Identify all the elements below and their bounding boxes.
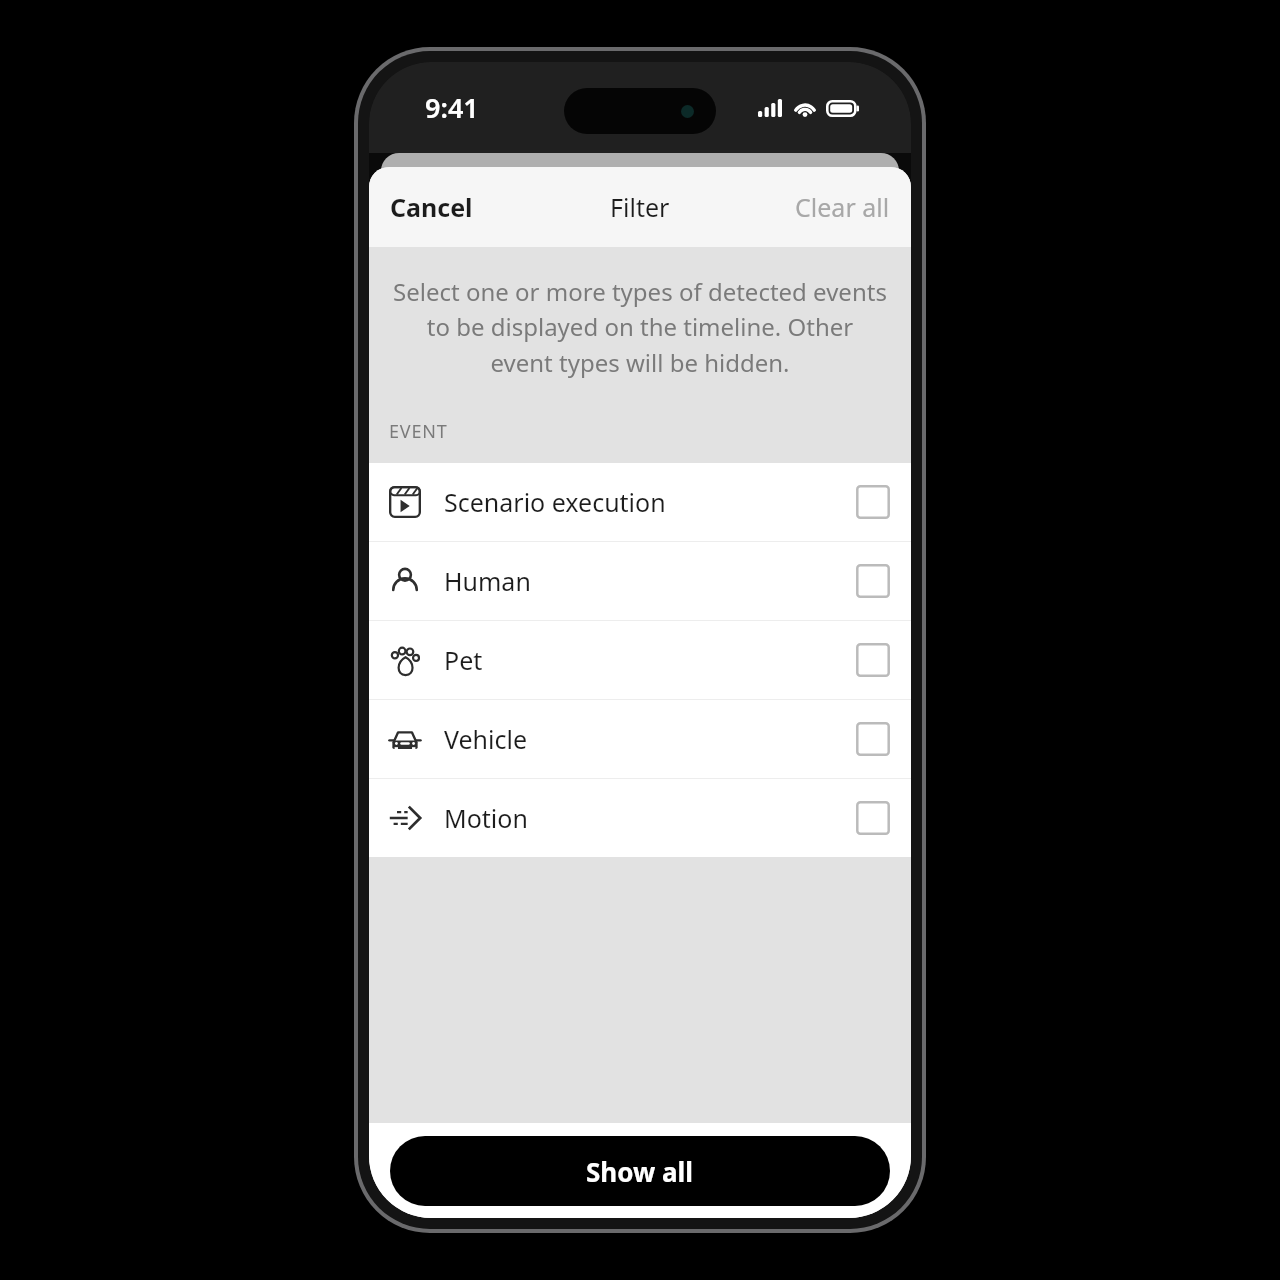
staticText: Motion: [444, 801, 528, 835]
button[interactable]: Vehicle: [369, 700, 911, 778]
button[interactable]: Clear all: [774, 174, 911, 240]
staticText: Show all: [586, 1154, 694, 1189]
staticText: EVENT: [389, 419, 448, 444]
staticText: 9:41: [425, 89, 479, 126]
button[interactable]: Pet: [369, 621, 911, 699]
button[interactable]: Motion: [856, 801, 890, 835]
staticText: Vehicle: [444, 722, 528, 756]
button[interactable]: Vehicle: [856, 722, 890, 756]
button[interactable]: Cancel: [369, 174, 494, 240]
button[interactable]: Human: [369, 542, 911, 620]
staticText: Cancel: [390, 190, 473, 224]
button[interactable]: Show all: [390, 1136, 890, 1206]
staticText: Pet: [444, 643, 483, 677]
button[interactable]: Motion: [369, 779, 911, 857]
staticText: Scenario execution: [444, 485, 666, 519]
button[interactable]: Human: [856, 564, 890, 598]
staticText: Filter: [610, 190, 670, 224]
staticText: Clear all: [795, 190, 890, 224]
button[interactable]: Scenario execution: [369, 463, 911, 541]
button[interactable]: Scenario execution: [856, 485, 890, 519]
button[interactable]: Pet: [856, 643, 890, 677]
staticText: Human: [444, 564, 531, 598]
staticText: Select one or more types of detected eve…: [393, 275, 887, 379]
